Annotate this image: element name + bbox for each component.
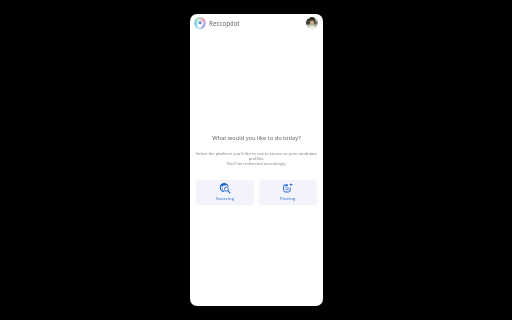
- staticText: Sourcing: [216, 195, 235, 201]
- button[interactable]: Posting: [259, 180, 317, 205]
- staticText: Select the platform you'd like to use to…: [196, 151, 317, 166]
- staticText: Posting: [280, 195, 296, 201]
- other: Profile: [306, 17, 318, 29]
- staticText: What would you like to do today?: [212, 134, 301, 142]
- staticText: Reccopilot: [209, 19, 240, 28]
- button[interactable]: Sourcing: [196, 180, 254, 205]
- other: Reccopilot logo: [194, 17, 206, 29]
